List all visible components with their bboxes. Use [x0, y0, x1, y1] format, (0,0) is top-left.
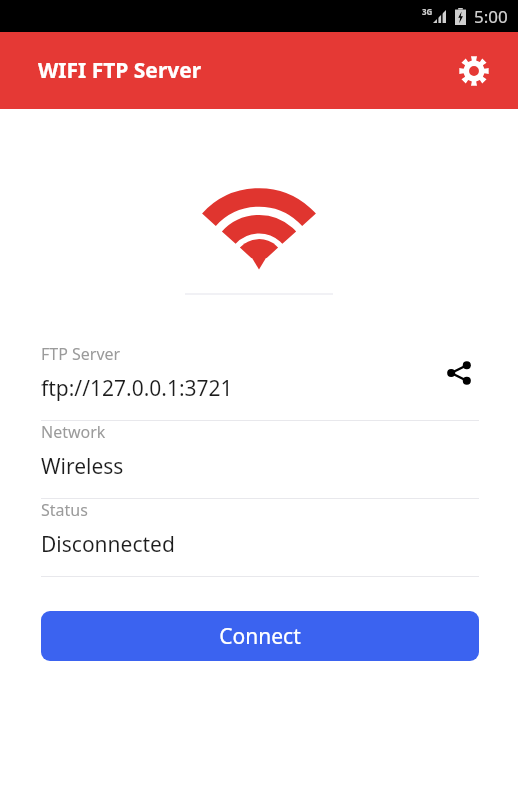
staticText: 5:00 [474, 5, 508, 28]
staticText: ftp://127.0.0.1:3721 [41, 374, 233, 403]
staticText: Connect [219, 622, 301, 651]
staticText: Network [41, 421, 106, 443]
button[interactable]: Share [439, 353, 479, 393]
button[interactable]: Network [0, 421, 518, 499]
staticText: FTP Server [41, 343, 121, 365]
button[interactable]: Status [0, 499, 518, 577]
button[interactable]: FTP Server [0, 343, 518, 421]
staticText: WIFI FTP Server [38, 56, 202, 85]
button[interactable]: Connect [41, 611, 479, 661]
staticText: Disconnected [41, 530, 175, 559]
staticText: 3G [422, 6, 433, 17]
button[interactable]: Settings [452, 49, 496, 93]
staticText: Wireless [41, 452, 124, 481]
staticText: Status [41, 499, 88, 521]
